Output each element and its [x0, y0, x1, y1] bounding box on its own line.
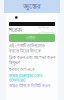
- staticText: এই পেজটি ডাউনলোড করতে নিচের লিংকে: [9, 43, 45, 54]
- staticText: ক্লিক করুন এবং অপেক্ষা করুন কিছুক্ষণ: [9, 55, 55, 66]
- staticText: ধন্যবাদ আপনাকে: [9, 67, 35, 72]
- staticText: ডাউনলোড করুন: [26, 29, 38, 47]
- staticText: শিরোনাম: [9, 28, 22, 33]
- staticText: বিজ্ঞাপন ডাউনলোড: [38, 26, 55, 35]
- staticText: পরে জুস্তের পেজে: [23, 0, 41, 21]
- button[interactable]: ডাউনলোড করুন: [9, 34, 55, 42]
- button[interactable]: পরে জুস্তের পেজে: [4, 0, 60, 13]
- staticText: আরও জানতে ভিজিট করুন: [9, 84, 50, 89]
- staticText: www.example.com/download: [9, 73, 42, 82]
